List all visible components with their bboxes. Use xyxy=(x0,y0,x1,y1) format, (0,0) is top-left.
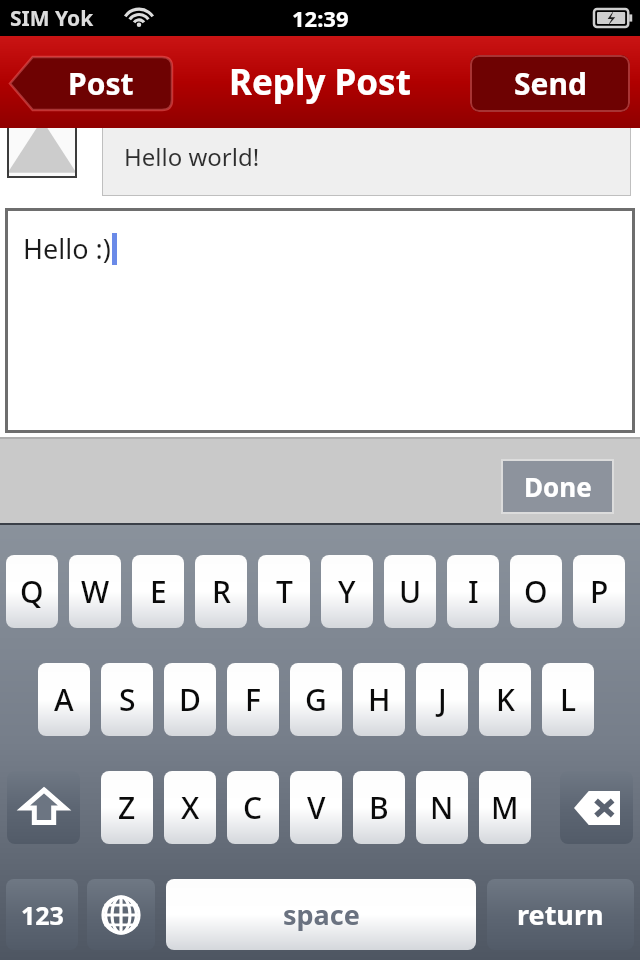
button[interactable]: B xyxy=(353,771,405,844)
button[interactable]: J xyxy=(416,663,468,736)
staticText: F xyxy=(245,679,261,720)
staticText: K xyxy=(496,679,515,720)
button[interactable]: S xyxy=(101,663,153,736)
button[interactable]: Done xyxy=(501,459,614,514)
button[interactable]: K xyxy=(479,663,531,736)
button[interactable]: I xyxy=(447,555,499,628)
button[interactable]: W xyxy=(69,555,121,628)
staticText: Q xyxy=(20,571,44,612)
staticText: J xyxy=(438,679,447,720)
staticText: C xyxy=(243,787,263,828)
button[interactable]: L xyxy=(542,663,594,736)
button[interactable]: F xyxy=(227,663,279,736)
button[interactable]: Q xyxy=(6,555,58,628)
staticText: X xyxy=(181,787,200,828)
staticText: 123 xyxy=(21,898,64,932)
staticText: Z xyxy=(118,787,136,828)
staticText: G xyxy=(305,679,327,720)
button[interactable]: 123 xyxy=(6,879,78,950)
button[interactable]: O xyxy=(510,555,562,628)
staticText: M xyxy=(491,787,519,828)
staticText: space xyxy=(283,896,360,933)
button[interactable]: G xyxy=(290,663,342,736)
staticText: V xyxy=(307,787,326,828)
staticText: return xyxy=(517,896,604,933)
staticText: Reply Post xyxy=(229,58,411,106)
staticText: R xyxy=(212,571,231,612)
staticText: Done xyxy=(524,469,592,504)
button[interactable]: Backspace xyxy=(560,771,633,844)
staticText: P xyxy=(590,571,609,612)
staticText: Hello world! xyxy=(124,140,260,173)
staticText: Send xyxy=(514,63,587,104)
button[interactable]: Change keyboard xyxy=(87,879,155,950)
staticText: S xyxy=(119,679,136,720)
button[interactable]: X xyxy=(164,771,216,844)
staticText: Hello :) xyxy=(23,230,111,267)
button[interactable]: P xyxy=(573,555,625,628)
staticText: A xyxy=(54,679,74,720)
staticText: SIM Yok xyxy=(10,4,94,33)
staticText: E xyxy=(150,571,167,612)
staticText: B xyxy=(369,787,389,828)
button[interactable]: R xyxy=(195,555,247,628)
button[interactable]: C xyxy=(227,771,279,844)
button[interactable]: Y xyxy=(321,555,373,628)
button[interactable]: H xyxy=(353,663,405,736)
button[interactable]: Send xyxy=(470,55,630,112)
staticText: N xyxy=(430,787,454,828)
staticText: D xyxy=(179,679,201,720)
button[interactable]: N xyxy=(416,771,468,844)
button[interactable]: Z xyxy=(101,771,153,844)
button[interactable]: Hello :) xyxy=(5,208,635,433)
staticText: Post xyxy=(68,63,134,104)
staticText: O xyxy=(524,571,548,612)
staticText: I xyxy=(468,571,479,612)
button[interactable]: A xyxy=(38,663,90,736)
staticText: T xyxy=(276,571,293,612)
staticText: U xyxy=(399,571,422,612)
staticText: Y xyxy=(338,571,356,612)
button[interactable]: U xyxy=(384,555,436,628)
button[interactable]: Shift xyxy=(7,771,80,844)
button[interactable]: M xyxy=(479,771,531,844)
button[interactable]: T xyxy=(258,555,310,628)
button[interactable]: Post xyxy=(10,55,172,112)
button[interactable]: E xyxy=(132,555,184,628)
button[interactable]: return xyxy=(487,879,634,950)
staticText: 12:39 xyxy=(292,3,349,33)
staticText: H xyxy=(368,679,391,720)
button[interactable]: space xyxy=(166,879,476,950)
button[interactable]: D xyxy=(164,663,216,736)
staticText: L xyxy=(560,679,577,720)
button[interactable]: V xyxy=(290,771,342,844)
staticText: W xyxy=(81,571,110,612)
